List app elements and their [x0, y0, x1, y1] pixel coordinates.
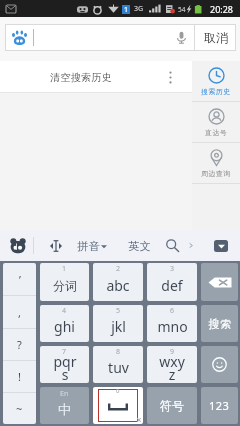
button[interactable] — [34, 24, 168, 51]
button[interactable]: More — [185, 230, 197, 261]
staticText: En — [60, 389, 69, 399]
staticText: wxyz — [159, 352, 185, 383]
staticText: 拼音 — [77, 239, 100, 253]
button[interactable]: 取消 — [195, 24, 236, 51]
button[interactable]: 直达号 — [192, 102, 240, 142]
staticText: 123 — [209, 398, 230, 413]
button[interactable]: ! — [3, 361, 36, 392]
button[interactable]: En — [40, 387, 89, 424]
staticText: 直达号 — [205, 128, 228, 137]
staticText: abc — [106, 276, 130, 295]
button[interactable]: ? — [3, 329, 36, 360]
staticText: 中 — [58, 401, 71, 417]
staticText: def — [161, 276, 183, 295]
staticText: 20:28 — [210, 3, 234, 15]
button[interactable]: 4 — [40, 305, 89, 342]
button[interactable]: 7 — [40, 346, 89, 383]
staticText: ! — [18, 369, 21, 384]
staticText: 1 — [62, 264, 67, 274]
staticText: 清空搜索历史 — [50, 71, 113, 84]
button[interactable]: Baidu — [5, 24, 33, 51]
staticText: ’ — [19, 272, 21, 287]
button[interactable]: Baidu IME — [0, 230, 33, 261]
staticText: 0 — [116, 387, 120, 395]
button[interactable]: Voice search — [168, 24, 194, 51]
button[interactable]: 符号 — [147, 387, 197, 424]
staticText: 英文 — [128, 239, 151, 253]
staticText: 5 — [116, 306, 121, 316]
staticText: , — [18, 305, 21, 320]
button[interactable]: ~ — [3, 393, 36, 424]
staticText: 4 — [62, 306, 67, 316]
button[interactable]: 2 — [93, 263, 143, 301]
staticText: 3 — [170, 264, 175, 274]
staticText: 8 — [116, 347, 121, 357]
button[interactable]: ’ — [3, 263, 36, 295]
button[interactable]: 搜索历史 — [192, 61, 240, 101]
staticText: 1 — [124, 5, 129, 14]
staticText: 取消 — [204, 30, 228, 45]
staticText: 6 — [170, 306, 175, 316]
button[interactable]: 6 — [147, 305, 197, 342]
staticText: 9 — [170, 347, 175, 357]
button[interactable]: , — [3, 296, 36, 328]
staticText: 2 — [116, 264, 121, 274]
button[interactable]: 9 — [147, 346, 197, 383]
staticText: 54 — [178, 5, 186, 14]
staticText: 搜索历史 — [201, 87, 231, 96]
button[interactable]: 3 — [147, 263, 197, 301]
button[interactable]: Space — [93, 387, 143, 424]
staticText: 7 — [62, 347, 67, 357]
button[interactable]: 清空搜索历史 — [0, 61, 192, 93]
button[interactable] — [201, 263, 238, 301]
staticText: tuv — [108, 358, 129, 377]
button[interactable] — [201, 346, 238, 383]
staticText: 符号 — [160, 398, 184, 413]
staticText: 3G — [134, 4, 144, 14]
button[interactable]: 123 — [201, 387, 238, 424]
button[interactable]: 8 — [93, 346, 143, 383]
button[interactable]: Hide keyboard — [214, 240, 228, 252]
button[interactable]: Search — [160, 230, 185, 261]
button[interactable]: 5 — [93, 305, 143, 342]
button[interactable]: 周边查询 — [192, 143, 240, 183]
staticText: jkl — [111, 317, 126, 336]
button[interactable]: 搜索 — [201, 305, 238, 342]
button[interactable]: 1 — [40, 263, 89, 301]
button[interactable]: Move cursor — [34, 230, 65, 261]
button[interactable]: 英文 — [119, 230, 160, 261]
staticText: mno — [157, 317, 188, 336]
staticText: 周边查询 — [201, 169, 231, 178]
staticText: ~ — [16, 401, 23, 416]
staticText: ghi — [54, 317, 75, 336]
staticText: ? — [17, 337, 22, 352]
staticText: 分词 — [53, 278, 77, 293]
staticText: pqrs — [52, 352, 78, 383]
button[interactable]: More options — [164, 61, 192, 93]
staticText: 搜索 — [208, 317, 232, 331]
button[interactable]: 拼音 — [65, 230, 119, 261]
